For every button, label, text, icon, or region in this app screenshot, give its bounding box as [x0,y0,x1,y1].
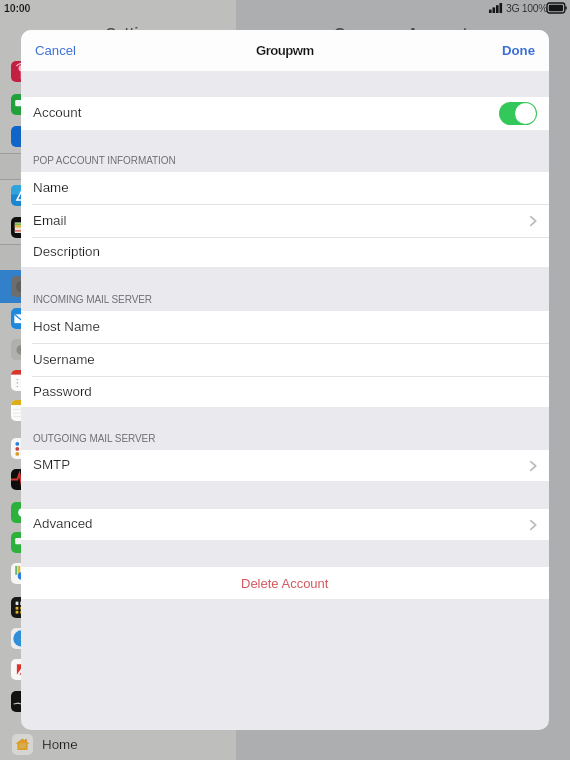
staticText: Settings [106,24,166,41]
button[interactable]: App [11,61,32,82]
button[interactable]: Password [21,377,549,407]
staticText: Groupwm Account [334,24,468,41]
button[interactable]: App [11,339,32,360]
button[interactable]: App [11,532,32,553]
button[interactable]: Delete Account [21,567,549,599]
staticText: Groupwm [256,43,314,58]
button[interactable]: App [11,370,32,391]
button[interactable]: App [11,502,32,523]
staticText: INCOMING MAIL SERVER [33,294,152,305]
staticText: 3G 100% [506,2,548,14]
button[interactable]: SMTP [21,450,549,481]
button[interactable]: Account [21,97,549,130]
button[interactable]: App [11,126,32,147]
staticText: OUTGOING MAIL SERVER [33,433,156,444]
button[interactable]: App [11,308,32,329]
button[interactable]: App [11,691,32,712]
staticText: Email [33,213,67,228]
button[interactable]: App [11,597,32,618]
staticText: Done [502,43,535,58]
button[interactable]: Description [21,238,549,267]
button[interactable]: App [11,217,32,238]
staticText: Description [33,244,100,259]
button[interactable]: App [11,628,32,649]
button[interactable]: App [11,438,32,459]
staticText: Cancel [35,43,77,58]
staticText: Advanced [33,516,93,531]
button[interactable]: Advanced [21,509,549,540]
button[interactable]: Done [488,33,549,68]
staticText: SMTP [33,457,71,472]
button[interactable]: App [11,400,32,421]
button[interactable]: Host Name [21,311,549,343]
staticText: Home [42,737,78,752]
button[interactable]: Account toggle [499,102,537,125]
button[interactable]: App [11,94,32,115]
button[interactable]: Name [21,172,549,204]
staticText: Account [33,105,82,120]
button[interactable]: App [11,185,32,206]
button[interactable]: Home [12,734,78,755]
staticText: Name [33,180,69,195]
staticText: Delete Account [241,576,329,591]
staticText: Password [33,384,92,399]
button[interactable]: App [11,276,32,297]
button[interactable]: App [11,469,32,490]
button[interactable]: Cancel [21,33,91,68]
button[interactable]: Email [21,205,549,237]
staticText: POP ACCOUNT INFORMATION [33,155,176,166]
button[interactable]: App [11,563,32,584]
button[interactable]: App [11,659,32,680]
staticText: Host Name [33,319,100,334]
staticText: Username [33,352,95,367]
staticText: 10:00 [4,2,31,14]
button[interactable]: Username [21,344,549,376]
